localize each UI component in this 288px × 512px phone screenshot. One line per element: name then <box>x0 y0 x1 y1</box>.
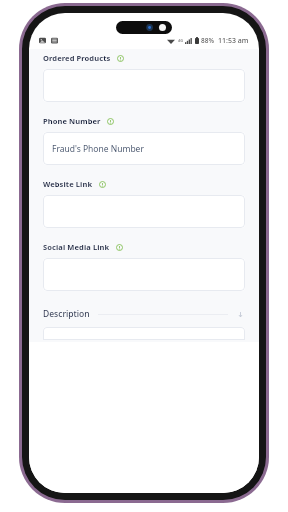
staticText: Phone Number <box>43 116 101 126</box>
staticText: 11:53 am <box>218 36 249 46</box>
staticText: Social Media Link <box>43 242 110 252</box>
button[interactable] <box>43 195 245 228</box>
button[interactable]: Info about Social Media Link <box>115 243 124 252</box>
staticText: Fraud's Phone Number <box>52 143 144 155</box>
button[interactable]: Info about Ordered Products <box>116 54 125 63</box>
button[interactable] <box>43 327 245 340</box>
button[interactable]: Description <box>43 308 245 320</box>
button[interactable]: Fraud's Phone Number <box>43 132 245 165</box>
button[interactable]: Info about Website Link <box>98 180 107 189</box>
staticText: Ordered Products <box>43 53 111 63</box>
staticText: Description <box>43 308 90 320</box>
button[interactable] <box>43 258 245 291</box>
staticText: Website Link <box>43 179 93 189</box>
staticText: 4G <box>178 38 184 43</box>
staticText: 88% <box>201 36 214 45</box>
other: Expand description <box>236 310 245 319</box>
button[interactable] <box>43 69 245 102</box>
button[interactable]: Info about Phone Number <box>106 117 115 126</box>
